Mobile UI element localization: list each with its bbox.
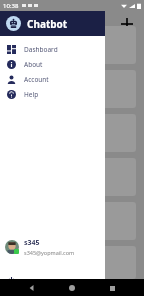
button[interactable]: Add [116,13,138,35]
staticText: Chatbot [27,17,68,31]
button[interactable]: Toggle [8,114,136,152]
button[interactable]: Toggle [8,26,136,64]
button[interactable]: Toggle [8,246,136,279]
button[interactable]: Recent apps [104,280,120,296]
button[interactable]: Back [24,280,40,296]
staticText: About [24,60,43,69]
button[interactable]: Toggle [8,202,136,240]
button[interactable]: Toggle [8,158,136,196]
button[interactable]: Help [0,87,105,102]
staticText: s345@yopmail.com [24,249,75,256]
button[interactable]: Chatbot [0,11,105,36]
button[interactable]: About [0,57,105,72]
button[interactable]: Dashboard [0,42,105,57]
staticText: s345 [24,238,40,248]
button[interactable]: Home [64,280,80,296]
button[interactable]: Account [0,72,105,87]
button[interactable]: Toggle [18,40,38,50]
staticText: Sign Out [24,277,51,286]
button[interactable]: Sign Out [0,272,105,290]
button[interactable]: Back [24,280,40,296]
button[interactable]: Recent apps [104,280,120,296]
button[interactable]: Toggle [8,70,136,108]
staticText: Help [24,90,39,99]
staticText: Dashboard [24,45,58,54]
button[interactable]: Toggle [18,84,38,94]
button[interactable]: Home [64,280,80,296]
button[interactable]: s345 [0,234,105,260]
staticText: 10:38 [3,2,19,10]
staticText: Account [24,75,49,84]
